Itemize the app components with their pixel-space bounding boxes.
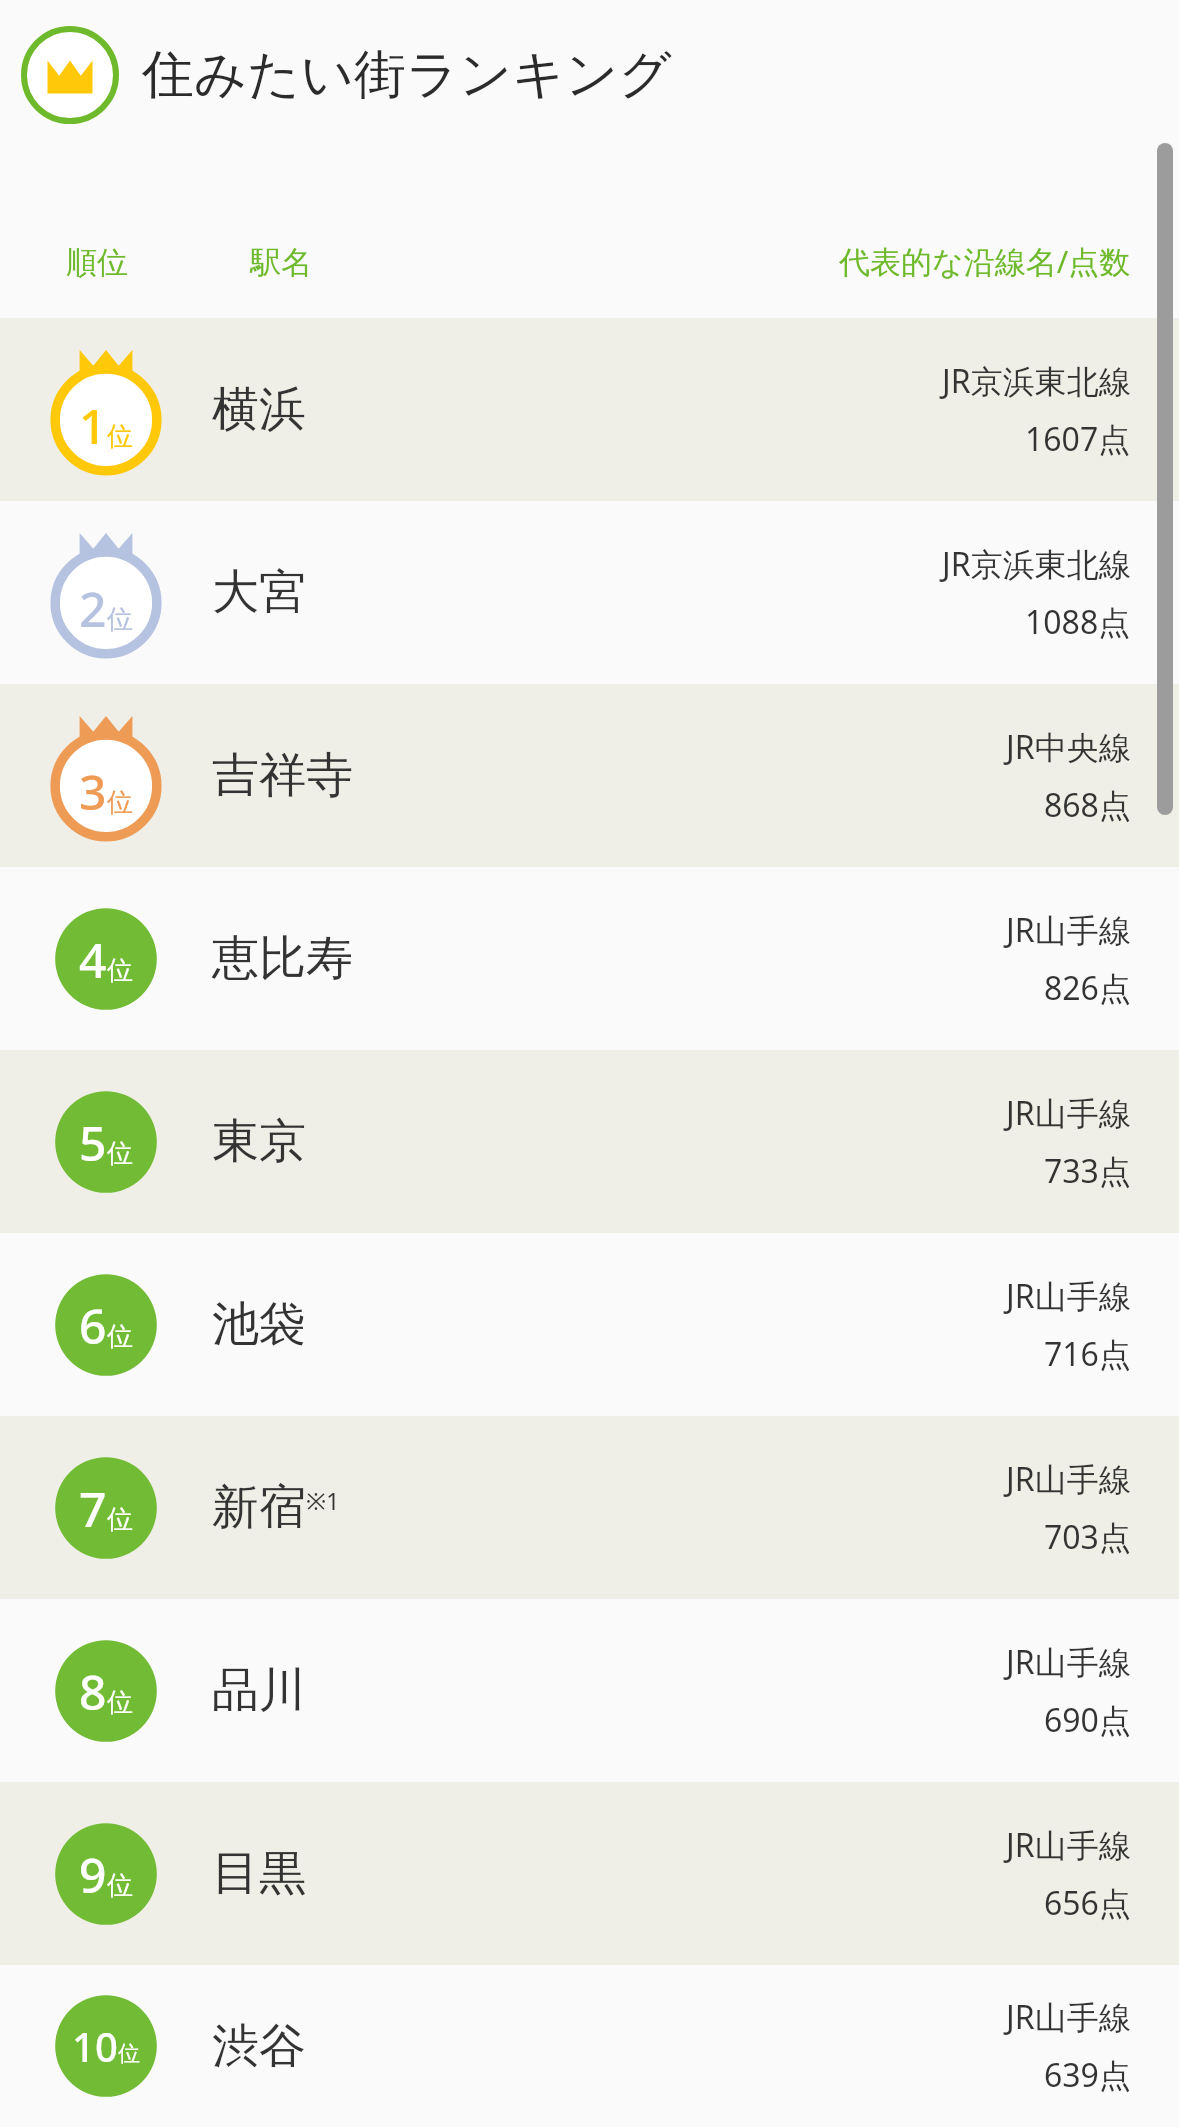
staticText: 位 xyxy=(107,786,133,819)
staticText: 恵比寿 xyxy=(212,929,353,988)
staticText: 位 xyxy=(107,1137,133,1170)
staticText: 順位 xyxy=(66,243,128,282)
staticText: 位 xyxy=(107,954,133,987)
staticText: 1088点 xyxy=(1025,600,1131,644)
staticText: 1607点 xyxy=(1025,417,1131,461)
staticText: 1 xyxy=(79,393,107,458)
staticText: JR山手線 xyxy=(1006,1823,1131,1867)
staticText: 住みたい街ランキング xyxy=(142,42,672,108)
staticText: 703点 xyxy=(1044,1515,1131,1559)
staticText: 位 xyxy=(107,1686,133,1719)
staticText: 7 xyxy=(79,1476,107,1541)
button[interactable]: 6 xyxy=(0,1233,1179,1416)
staticText: 新宿※1 xyxy=(212,1478,340,1537)
button[interactable]: 8 xyxy=(0,1599,1179,1782)
staticText: JR山手線 xyxy=(1006,908,1131,952)
button[interactable]: 7 xyxy=(0,1416,1179,1599)
button[interactable]: 2 xyxy=(0,501,1179,684)
button[interactable]: 10 xyxy=(0,1965,1179,2127)
staticText: 826点 xyxy=(1044,966,1131,1010)
staticText: JR京浜東北線 xyxy=(942,359,1131,403)
staticText: JR山手線 xyxy=(1006,1091,1131,1135)
staticText: 代表的な沿線名/点数 xyxy=(839,240,1131,282)
staticText: 位 xyxy=(107,1869,133,1902)
staticText: JR中央線 xyxy=(1006,725,1131,769)
other: Ranking crown logo xyxy=(20,25,120,125)
staticText: JR京浜東北線 xyxy=(942,542,1131,586)
button[interactable]: 5 xyxy=(0,1050,1179,1233)
staticText: 6 xyxy=(79,1293,107,1358)
button[interactable]: 9 xyxy=(0,1782,1179,1965)
staticText: 9 xyxy=(79,1842,107,1907)
staticText: 目黒 xyxy=(212,1844,306,1903)
staticText: 4 xyxy=(79,927,107,992)
staticText: 位 xyxy=(107,603,133,636)
staticText: 656点 xyxy=(1044,1881,1131,1925)
staticText: 駅名 xyxy=(250,243,312,282)
staticText: 716点 xyxy=(1044,1332,1131,1376)
staticText: 868点 xyxy=(1044,783,1131,827)
staticText: 大宮 xyxy=(212,563,306,622)
staticText: 横浜 xyxy=(212,380,306,439)
staticText: 639点 xyxy=(1044,2053,1131,2097)
staticText: 渋谷 xyxy=(212,2017,306,2076)
staticText: 2 xyxy=(79,576,107,641)
staticText: 5 xyxy=(79,1110,107,1175)
staticText: 品川 xyxy=(212,1661,306,1720)
staticText: 10 xyxy=(72,2019,118,2073)
staticText: 位 xyxy=(107,420,133,453)
staticText: 690点 xyxy=(1044,1698,1131,1742)
staticText: 3 xyxy=(79,759,107,824)
button[interactable]: 4 xyxy=(0,867,1179,1050)
staticText: 位 xyxy=(107,1503,133,1536)
staticText: 吉祥寺 xyxy=(212,746,353,805)
staticText: 位 xyxy=(118,2040,140,2068)
staticText: 位 xyxy=(107,1320,133,1353)
staticText: JR山手線 xyxy=(1006,1274,1131,1318)
staticText: JR山手線 xyxy=(1006,1457,1131,1501)
staticText: 池袋 xyxy=(212,1295,306,1354)
staticText: 733点 xyxy=(1044,1149,1131,1193)
staticText: JR山手線 xyxy=(1006,1995,1131,2039)
staticText: 8 xyxy=(79,1659,107,1724)
button[interactable]: 1 xyxy=(0,318,1179,501)
button[interactable]: 3 xyxy=(0,684,1179,867)
staticText: JR山手線 xyxy=(1006,1640,1131,1684)
staticText: 東京 xyxy=(212,1112,306,1171)
